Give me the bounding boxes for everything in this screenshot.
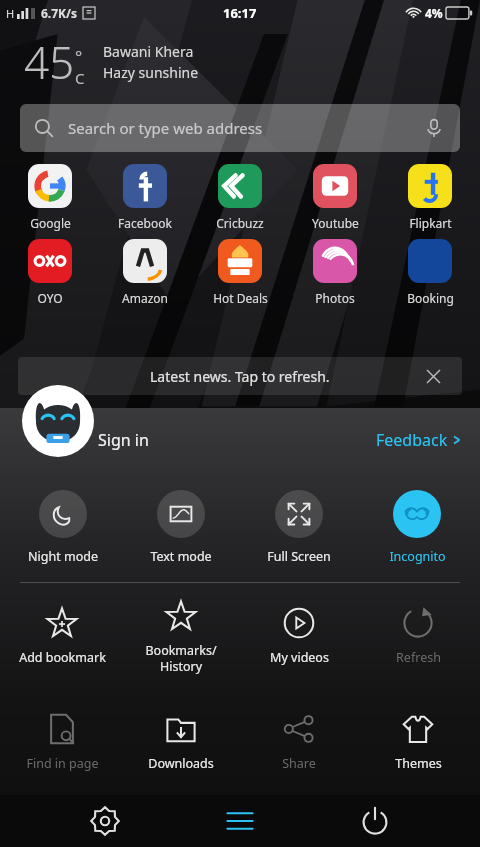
button[interactable]: 45 — [24, 32, 85, 92]
staticText: Hot Deals — [213, 290, 268, 306]
staticText: 4% — [425, 5, 443, 21]
staticText: H — [6, 6, 15, 21]
button[interactable]: Facebook — [100, 164, 190, 231]
button[interactable]: Exit — [345, 795, 405, 847]
staticText: Search or type web address — [68, 118, 263, 138]
staticText: 6.7K/s — [41, 5, 78, 21]
staticText: Bawani Khera — [103, 42, 194, 61]
staticText: Hazy sunshine — [103, 63, 199, 82]
staticText: 16:17 — [223, 4, 257, 22]
button[interactable]: Latest news. Tap to refresh. — [18, 357, 462, 395]
staticText: Cricbuzz — [216, 215, 264, 231]
button[interactable]: Youtube — [290, 164, 380, 231]
button[interactable]: Tabs menu — [210, 795, 270, 847]
staticText: OYO — [37, 290, 63, 306]
button[interactable]: OYO — [5, 239, 95, 306]
button[interactable]: Sign in — [98, 429, 149, 451]
button[interactable]: Photos — [290, 239, 380, 306]
staticText: Text mode — [150, 548, 212, 565]
button[interactable]: Close — [427, 370, 440, 383]
button[interactable]: Full Screen — [244, 490, 354, 565]
button[interactable]: Settings — [75, 795, 135, 847]
staticText: Incognito — [389, 548, 446, 565]
button[interactable]: Incognito — [362, 490, 472, 565]
staticText: Night mode — [28, 548, 98, 565]
staticText: C — [75, 68, 85, 88]
staticText: Find in page — [26, 755, 99, 772]
staticText: Flipkart — [409, 215, 452, 231]
button[interactable]: Night mode — [8, 490, 118, 565]
staticText: Full Screen — [267, 548, 331, 565]
button[interactable]: Text mode — [126, 490, 236, 565]
staticText: 45 — [24, 32, 75, 92]
staticText: Booking — [407, 290, 454, 306]
button[interactable]: Hot Deals — [195, 239, 285, 306]
staticText: Downloads — [148, 755, 214, 772]
staticText: Add bookmark — [19, 649, 106, 666]
staticText: ° — [75, 45, 83, 68]
button[interactable]: Google — [5, 164, 95, 231]
staticText: Youtube — [312, 215, 359, 231]
button[interactable]: Account avatar — [22, 385, 94, 457]
button[interactable]: Booking — [385, 239, 475, 306]
button[interactable]: Refresh — [362, 606, 474, 666]
staticText: Amazon — [122, 290, 168, 306]
staticText: Bookmarks/ History — [145, 642, 217, 674]
staticText: My videos — [270, 649, 329, 666]
button[interactable]: Add bookmark — [6, 606, 118, 666]
staticText: Feedback — [376, 429, 448, 451]
staticText: Latest news. Tap to refresh. — [150, 367, 330, 386]
staticText: Photos — [315, 290, 355, 306]
button[interactable]: Themes — [362, 712, 474, 772]
other: Voice search — [424, 118, 444, 138]
button[interactable]: Amazon — [100, 239, 190, 306]
button[interactable]: Flipkart — [385, 164, 475, 231]
staticText: Refresh — [396, 649, 441, 666]
staticText: Share — [282, 755, 316, 772]
button[interactable]: Share — [243, 712, 355, 772]
staticText: Facebook — [118, 215, 172, 231]
button[interactable]: Find in page — [6, 712, 118, 772]
staticText: Themes — [395, 755, 442, 772]
staticText: Google — [30, 215, 71, 231]
button[interactable]: Downloads — [125, 712, 237, 772]
button[interactable]: Cricbuzz — [195, 164, 285, 231]
button[interactable]: Bookmarks/ History — [125, 599, 237, 674]
button[interactable]: Search or type web address — [20, 104, 460, 152]
button[interactable]: Feedback — [376, 429, 462, 451]
button[interactable]: My videos — [243, 606, 355, 666]
